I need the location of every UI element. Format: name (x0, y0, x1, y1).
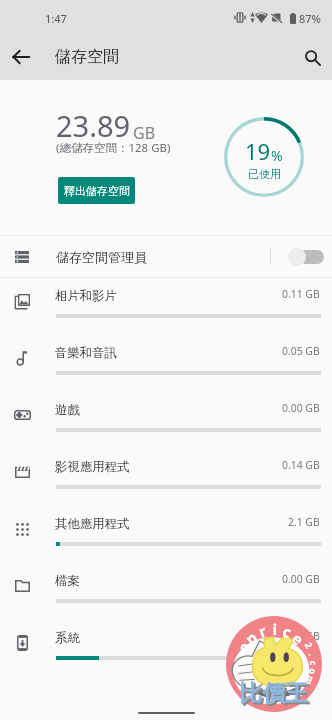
staticText: 0.00 GB (282, 401, 320, 415)
staticText: p (241, 627, 261, 648)
staticText: 0.14 GB (282, 458, 320, 472)
staticText: % (271, 146, 283, 165)
staticText: m (303, 674, 318, 687)
staticText: 儲存空間管理員 (56, 249, 147, 265)
staticText: (總儲存空間：128 GB) (56, 140, 171, 156)
staticText: 儲存空間 (55, 47, 119, 67)
staticText: 0.11 GB (282, 287, 320, 301)
staticText: 2.5 GB (288, 629, 320, 643)
staticText: 比價王 (239, 679, 308, 708)
button[interactable]: 系統 (0, 620, 332, 677)
button[interactable]: Search (296, 41, 328, 73)
staticText: 1:47 (45, 11, 67, 26)
button[interactable]: Back (5, 41, 37, 73)
staticText: c (280, 621, 295, 642)
button[interactable]: 釋出儲存空間 (58, 177, 135, 204)
button[interactable] (0, 236, 269, 277)
staticText: 0.00 GB (282, 572, 320, 586)
staticText: t (294, 689, 305, 701)
staticText: 釋出儲存空間 (64, 184, 130, 198)
staticText: 19 (245, 136, 271, 166)
staticText: e (288, 628, 308, 649)
staticText: e (232, 638, 254, 656)
staticText: o (307, 667, 320, 676)
staticText: 遊戲 (55, 402, 80, 418)
button[interactable]: 影視應用程式 (0, 449, 332, 506)
button[interactable]: 音樂和音訊 (0, 335, 332, 392)
staticText: GB (133, 122, 156, 144)
button[interactable]: Toggle storage manager (278, 236, 332, 277)
staticText: 相片和影片 (55, 288, 117, 304)
staticText: 系統 (55, 630, 80, 646)
staticText: r (256, 620, 269, 641)
staticText: 87% (299, 11, 321, 26)
staticText: w (286, 692, 298, 707)
staticText: 2.1 GB (288, 515, 320, 529)
button[interactable]: 其他應用程式 (0, 506, 332, 563)
staticText: 其他應用程式 (55, 516, 130, 532)
staticText: 音樂和音訊 (55, 345, 117, 361)
staticText: 比價王 (241, 681, 310, 710)
button[interactable]: 遊戲 (0, 392, 332, 449)
staticText: . (300, 684, 311, 693)
staticText: 0.05 GB (282, 344, 320, 358)
staticText: 影視應用程式 (55, 459, 130, 475)
staticText: 檔案 (55, 573, 80, 589)
staticText: . (307, 651, 319, 657)
staticText: 23.89 (56, 106, 131, 145)
staticText: c (308, 660, 320, 666)
staticText: i (272, 619, 278, 639)
button[interactable]: 相片和影片 (0, 278, 332, 335)
button[interactable]: 檔案 (0, 563, 332, 620)
staticText: 2 (303, 640, 316, 651)
staticText: 已使用 (248, 167, 281, 181)
